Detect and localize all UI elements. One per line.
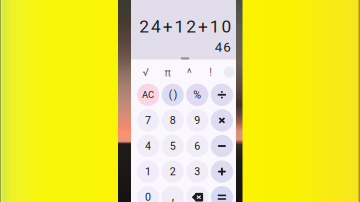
button[interactable]: ^ [179,63,199,81]
staticText: ( ) [169,89,177,101]
button[interactable]: √ [135,63,155,81]
staticText: 46 [215,39,230,55]
button[interactable]: 6 [186,135,208,157]
button[interactable]: 8 [161,109,184,131]
button[interactable]: 7 [137,109,159,131]
button[interactable]: AC [137,84,159,106]
staticText: AC [142,89,154,100]
button[interactable]: Divide [211,84,233,106]
staticText: % [193,88,201,101]
button[interactable]: 4 [137,135,159,157]
button[interactable]: 2 [161,160,184,183]
button[interactable]: % [186,84,208,106]
staticText: 7 [145,114,151,127]
staticText: 0 [145,191,151,202]
staticText: 3 [194,165,200,178]
staticText: 1 [145,165,151,178]
staticText: 9 [194,114,200,127]
staticText: , [172,189,174,202]
button[interactable]: 9 [186,109,208,131]
button[interactable]: π [158,63,178,81]
staticText: 2 [170,165,176,178]
button[interactable]: , [161,186,184,202]
button[interactable]: Multiply [211,109,233,131]
staticText: 24+12+10 [139,16,231,37]
button[interactable]: Equals [211,186,233,202]
button[interactable]: Subtract [211,135,233,157]
button[interactable]: ! [201,63,221,81]
button[interactable]: Delete [186,186,208,202]
button[interactable]: 0 [137,186,159,202]
staticText: ! [209,66,212,78]
staticText: π [165,66,171,79]
staticText: √ [142,66,148,78]
button[interactable]: 1 [137,160,159,183]
button[interactable]: 3 [186,160,208,183]
staticText: 5 [170,140,176,152]
staticText: ^ [187,67,192,81]
button[interactable]: ( ) [161,84,184,106]
staticText: 6 [194,140,200,152]
staticText: 4 [145,140,151,152]
button[interactable]: Add [211,160,233,183]
staticText: 8 [170,114,176,127]
button[interactable]: 5 [161,135,184,157]
